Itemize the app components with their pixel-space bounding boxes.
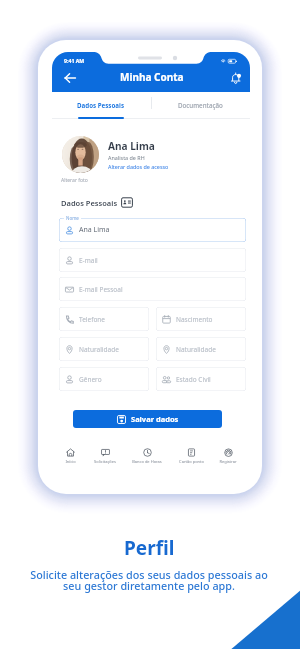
staticText: Início: [65, 459, 76, 464]
button[interactable]: Registrar: [208, 448, 248, 466]
staticText: Telefone: [79, 315, 106, 324]
button[interactable]: Naturalidade: [156, 337, 246, 361]
button[interactable]: E-mail: [59, 248, 246, 272]
button[interactable]: Solicitações: [85, 448, 125, 466]
staticText: Estado Civil: [176, 375, 211, 384]
staticText: Registrar: [219, 459, 237, 464]
staticText: Salvar dados: [131, 414, 179, 424]
staticText: Minha Conta: [120, 70, 184, 83]
staticText: Perfil: [124, 535, 175, 561]
button[interactable]: Alterar dados de acesso: [108, 163, 169, 170]
button[interactable]: Telefone: [59, 307, 149, 331]
button[interactable]: Naturalidade: [59, 337, 149, 361]
staticText: Solicite alterações dos seus dados pesso…: [30, 567, 268, 593]
staticText: Gênero: [79, 375, 102, 384]
staticText: Naturalidade: [176, 345, 216, 354]
button[interactable]: Salvar dados: [73, 410, 222, 428]
staticText: E-mail Pessoal: [79, 285, 123, 294]
button[interactable]: Voltar: [59, 67, 80, 88]
staticText: Dados Pessoais: [77, 101, 125, 109]
staticText: Analista de RH: [108, 154, 145, 161]
button[interactable]: E-mail Pessoal: [59, 277, 246, 301]
staticText: Nascimento: [176, 315, 213, 324]
button[interactable]: Gênero: [59, 367, 149, 391]
staticText: Cartão ponto: [179, 459, 204, 464]
button[interactable]: Cartão ponto: [171, 448, 211, 466]
button[interactable]: Documentação: [151, 92, 250, 121]
button[interactable]: Banco de Horas: [127, 448, 167, 466]
staticText: Dados Pessoais: [61, 198, 118, 208]
staticText: Documentação: [178, 101, 223, 109]
button[interactable]: Ana Lima: [59, 218, 246, 242]
button[interactable]: Estado Civil: [156, 367, 246, 391]
staticText: Solicitações: [94, 459, 116, 464]
staticText: Alterar foto: [61, 177, 88, 184]
button[interactable]: Dados Pessoais: [52, 92, 151, 121]
button[interactable]: Nascimento: [156, 307, 246, 331]
staticText: E-mail: [79, 256, 98, 265]
staticText: Banco de Horas: [132, 459, 162, 464]
staticText: 9:41 AM: [64, 57, 85, 64]
staticText: Ana Lima: [79, 225, 110, 235]
staticText: Nome: [66, 215, 79, 221]
button[interactable]: Notificações: [227, 69, 244, 86]
button[interactable]: Início: [52, 448, 90, 466]
staticText: Naturalidade: [79, 345, 119, 354]
staticText: Alterar dados de acesso: [108, 163, 169, 170]
staticText: Ana Lima: [108, 139, 155, 153]
